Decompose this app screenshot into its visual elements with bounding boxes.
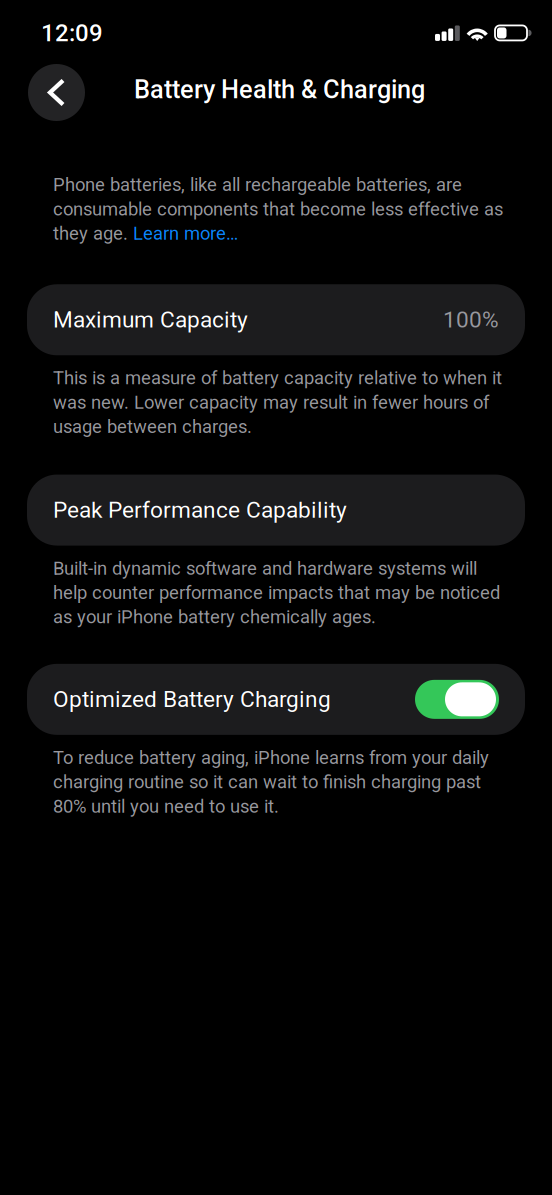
button[interactable]: Optimized Battery Charging bbox=[27, 664, 525, 735]
staticText: Battery Health & Charging bbox=[134, 75, 425, 104]
staticText: Optimized Battery Charging bbox=[53, 686, 331, 713]
button[interactable]: Maximum Capacity bbox=[27, 284, 525, 355]
staticText: Phone batteries, like all rechargeable b… bbox=[53, 174, 503, 244]
staticText: 12:09 bbox=[41, 19, 103, 47]
staticText: Maximum Capacity bbox=[53, 306, 248, 333]
staticText: This is a measure of battery capacity re… bbox=[53, 367, 502, 438]
staticText: Built-in dynamic software and hardware s… bbox=[53, 558, 500, 628]
staticText: Peak Performance Capability bbox=[53, 497, 347, 523]
button[interactable]: Phone batteries, like all rechargeable b… bbox=[0, 174, 552, 244]
staticText: 100% bbox=[443, 306, 499, 333]
staticText: To reduce battery aging, iPhone learns f… bbox=[53, 747, 489, 817]
button[interactable]: Back bbox=[28, 64, 85, 121]
button[interactable]: Peak Performance Capability bbox=[27, 475, 525, 546]
